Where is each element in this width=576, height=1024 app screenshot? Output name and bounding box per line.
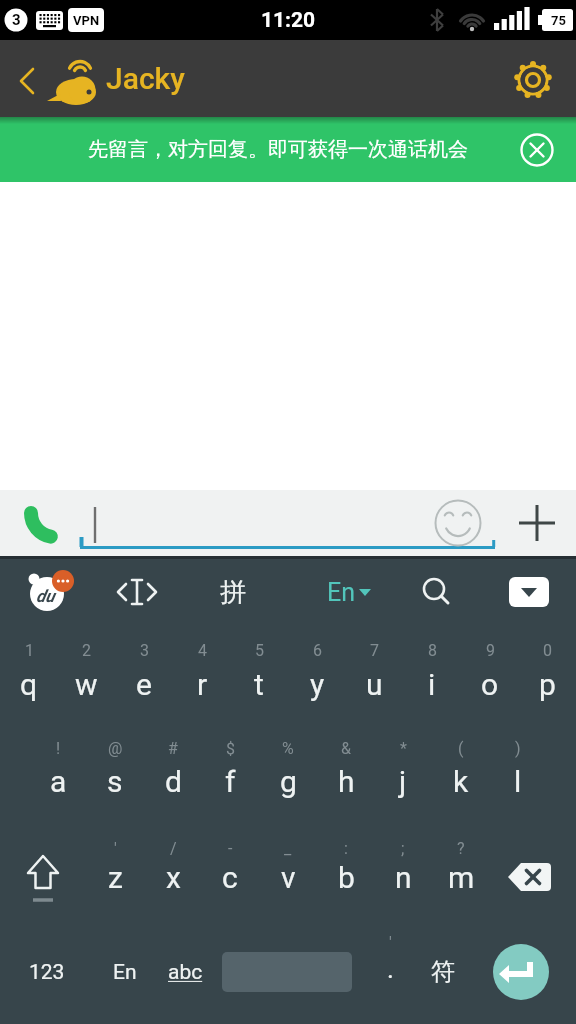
staticText: @ <box>108 739 123 758</box>
staticText: 8 <box>428 641 437 660</box>
button[interactable] <box>20 565 76 621</box>
button[interactable]: b <box>318 855 374 899</box>
staticText: ) <box>515 739 521 758</box>
button[interactable]: r <box>174 662 230 706</box>
staticText: q <box>20 667 38 702</box>
button[interactable]: v <box>260 855 316 899</box>
button[interactable] <box>505 52 561 108</box>
button[interactable] <box>5 50 49 110</box>
button[interactable]: 拼 <box>205 568 261 616</box>
staticText: p <box>539 667 556 702</box>
button[interactable]: . <box>368 947 412 991</box>
staticText: l <box>514 764 522 799</box>
staticText: v <box>281 860 296 895</box>
button[interactable] <box>11 851 75 903</box>
button[interactable]: k <box>433 759 489 803</box>
staticText: d <box>165 764 182 799</box>
staticText: s <box>107 764 123 799</box>
staticText: : <box>344 839 348 858</box>
staticText: b <box>338 860 355 895</box>
staticText: - <box>228 839 233 858</box>
staticText: ; <box>401 839 405 858</box>
button[interactable] <box>499 851 563 903</box>
button[interactable]: t <box>231 662 287 706</box>
button[interactable]: En <box>97 948 153 996</box>
staticText: 6 <box>313 641 322 660</box>
staticText: abc <box>168 960 203 985</box>
button[interactable] <box>433 498 483 548</box>
button[interactable]: s <box>87 759 143 803</box>
button[interactable]: j <box>375 759 431 803</box>
button[interactable]: l <box>490 759 546 803</box>
button[interactable]: u <box>346 662 402 706</box>
staticText: i <box>428 667 436 702</box>
button[interactable]: h <box>318 759 374 803</box>
staticText: m <box>448 860 475 895</box>
button[interactable]: 123 <box>15 948 79 996</box>
staticText: j <box>399 764 407 799</box>
button[interactable] <box>512 498 562 548</box>
button[interactable]: q <box>1 662 57 706</box>
staticText: 75 <box>551 13 566 28</box>
staticText: 1 <box>25 641 34 660</box>
button[interactable]: n <box>375 855 431 899</box>
staticText: a <box>50 764 67 799</box>
staticText: z <box>108 860 123 895</box>
button[interactable]: c <box>202 855 258 899</box>
staticText: 7 <box>370 641 379 660</box>
staticText: 4 <box>198 641 207 660</box>
staticText: n <box>395 860 412 895</box>
staticText: ? <box>457 839 465 858</box>
button[interactable]: i <box>404 662 460 706</box>
button[interactable]: o <box>462 662 518 706</box>
button[interactable]: f <box>202 759 258 803</box>
staticText: En <box>113 960 137 985</box>
staticText: r <box>197 667 208 702</box>
button[interactable]: abc <box>157 948 213 996</box>
staticText: du <box>36 586 55 606</box>
staticText: 123 <box>29 960 65 985</box>
button[interactable]: p <box>519 662 575 706</box>
staticText: e <box>136 667 152 702</box>
button[interactable]: e <box>116 662 172 706</box>
button[interactable]: g <box>260 759 316 803</box>
button[interactable] <box>501 568 557 616</box>
staticText: f <box>225 764 236 799</box>
button[interactable]: m <box>433 855 489 899</box>
button[interactable] <box>8 492 72 554</box>
staticText: k <box>453 764 469 799</box>
staticText: w <box>75 667 98 702</box>
staticText: . <box>387 954 394 984</box>
staticText: y <box>310 667 325 702</box>
button[interactable]: y <box>289 662 345 706</box>
staticText: 11:20 <box>261 8 316 33</box>
button[interactable]: Jacky <box>106 40 185 117</box>
button[interactable]: x <box>145 855 201 899</box>
button[interactable]: En <box>306 568 376 616</box>
button[interactable] <box>514 127 560 173</box>
button[interactable]: 符 <box>419 948 467 996</box>
button[interactable] <box>493 944 549 1000</box>
staticText: En <box>327 578 356 607</box>
button[interactable] <box>409 568 465 616</box>
staticText: 0 <box>543 641 552 660</box>
button[interactable] <box>109 568 165 616</box>
button[interactable]: w <box>58 662 114 706</box>
staticText: # <box>168 739 178 758</box>
button[interactable]: d <box>145 759 201 803</box>
staticText: 5 <box>255 641 264 660</box>
staticText: / <box>170 839 177 858</box>
staticText: & <box>341 739 351 758</box>
staticText: x <box>166 860 181 895</box>
staticText: $ <box>226 739 235 758</box>
button[interactable] <box>80 494 495 552</box>
staticText: Jacky <box>106 61 185 96</box>
staticText: o <box>481 667 499 702</box>
staticText: VPN <box>73 13 100 28</box>
staticText: ( <box>458 739 464 758</box>
staticText: t <box>254 667 264 702</box>
staticText: ! <box>56 739 61 758</box>
button[interactable]: a <box>30 759 86 803</box>
button[interactable]: z <box>87 855 143 899</box>
